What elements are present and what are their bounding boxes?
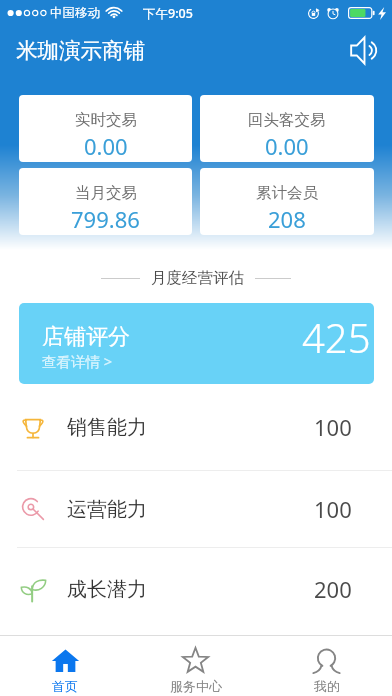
button[interactable]: 店铺评分 [19,303,374,384]
staticText: 100 [314,494,352,524]
staticText: 下午9:05 [143,5,193,22]
staticText: 799.86 [71,204,140,234]
button[interactable]: 服务中心 [130,636,261,696]
button[interactable]: 我的 [261,636,392,696]
staticText: 208 [268,204,306,234]
button[interactable]: 销售能力 [0,384,392,470]
staticText: 月度经营评估 [151,268,244,288]
button[interactable]: 实时交易 [19,95,192,162]
staticText: 查看详情 > [42,351,113,371]
staticText: 我的 [314,678,340,694]
staticText: 回头客交易 [248,110,326,130]
staticText: 100 [314,412,352,442]
staticText: 实时交易 [75,110,137,130]
staticText: 米珈演示商铺 [16,37,145,64]
button[interactable]: 成长潜力 [0,548,392,630]
staticText: 销售能力 [67,415,147,440]
button[interactable]: 回头客交易 [200,95,374,162]
button[interactable]: Sound [342,28,386,72]
staticText: 累计会员 [256,183,318,203]
staticText: 首页 [52,678,78,694]
staticText: 店铺评分 [42,323,130,351]
staticText: 服务中心 [170,678,222,694]
button[interactable]: 首页 [0,636,130,696]
button[interactable]: 当月交易 [19,168,192,235]
staticText: 425 [302,310,371,364]
staticText: 0.00 [265,131,309,161]
staticText: 当月交易 [75,183,137,203]
staticText: 运营能力 [67,497,147,522]
staticText: 中国移动 [50,5,100,21]
staticText: 200 [314,574,352,604]
button[interactable]: 运营能力 [0,471,392,547]
staticText: 成长潜力 [67,577,147,602]
button[interactable]: 累计会员 [200,168,374,235]
staticText: 0.00 [84,131,128,161]
